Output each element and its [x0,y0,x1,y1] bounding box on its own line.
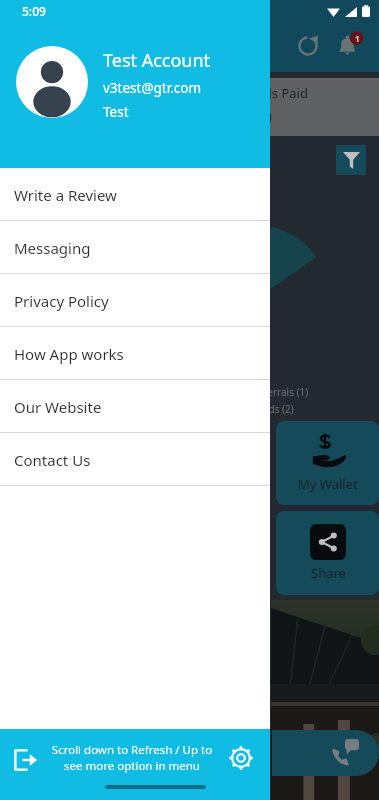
button[interactable]: Log out [8,743,42,777]
button[interactable]: My Wallet [276,421,379,505]
staticText: Messaging [14,238,91,258]
button[interactable]: Contact [272,730,379,776]
staticText: Write a Review [14,185,117,205]
staticText: My Wallet [298,475,358,493]
staticText: $0.00 [226,105,273,130]
button[interactable]: Refresh [293,31,323,61]
staticText: How App works [14,344,124,364]
staticText: v3test@gtr.com [103,79,202,97]
button[interactable]: Share [276,511,379,595]
staticText: Test [103,103,129,121]
staticText: Share [311,564,346,582]
button[interactable]: Contact Us [0,433,270,486]
button[interactable]: Write a Review [0,168,270,221]
staticText: Leads (2) [252,402,294,416]
button[interactable]: Rewards Paid [214,78,379,136]
button[interactable]: Our Website [0,380,270,433]
staticText: 5:09 [22,3,46,19]
button[interactable]: Filter [336,145,366,175]
staticText: Rewards Paid [226,84,308,102]
staticText: Scroll down to Refresh / Up to see more … [46,742,218,773]
staticText: Referrals (1) [252,385,309,399]
button[interactable]: Notifications [333,30,365,62]
staticText: Privacy Policy [14,291,109,311]
button[interactable]: Messaging [0,221,270,274]
staticText: Contact Us [14,450,91,470]
button[interactable]: Settings [224,741,258,775]
staticText: Test Account [103,48,211,73]
button[interactable]: Privacy Policy [0,274,270,327]
staticText: 1 [355,33,360,44]
staticText: Our Website [14,397,102,417]
button[interactable]: How App works [0,327,270,380]
